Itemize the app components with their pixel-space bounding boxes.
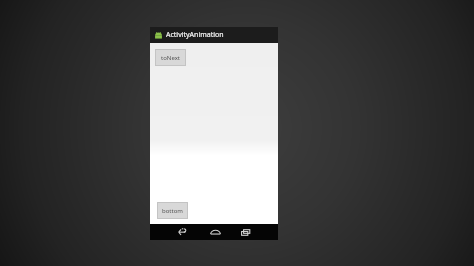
button[interactable]: toNext [155, 49, 186, 66]
button[interactable]: Back [172, 224, 192, 240]
button[interactable]: Home [204, 224, 226, 240]
staticText: ActivityAnimation [166, 30, 224, 40]
staticText: bottom [162, 207, 183, 215]
staticText: toNext [161, 54, 180, 62]
button[interactable]: Recent apps [236, 224, 256, 240]
button[interactable]: bottom [157, 202, 188, 219]
